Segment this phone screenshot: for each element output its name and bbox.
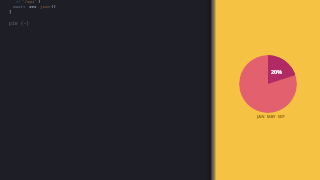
staticText: . [37,4,40,10]
button[interactable]: Share of traffic pie chart, 20 percent [239,55,297,113]
staticText: 20% [271,68,283,75]
staticText: pie {-} [9,20,30,27]
staticText: ) [38,0,41,5]
button[interactable]: JAN MAY SEP [257,114,285,120]
staticText: } [9,9,12,15]
staticText: t( [16,0,22,5]
staticText: await [13,4,29,10]
staticText: json [40,4,51,10]
staticText: res [29,4,37,10]
staticText: JAN MAY SEP [257,114,285,120]
staticText: '/api' [22,0,38,5]
staticText: () [51,4,57,10]
